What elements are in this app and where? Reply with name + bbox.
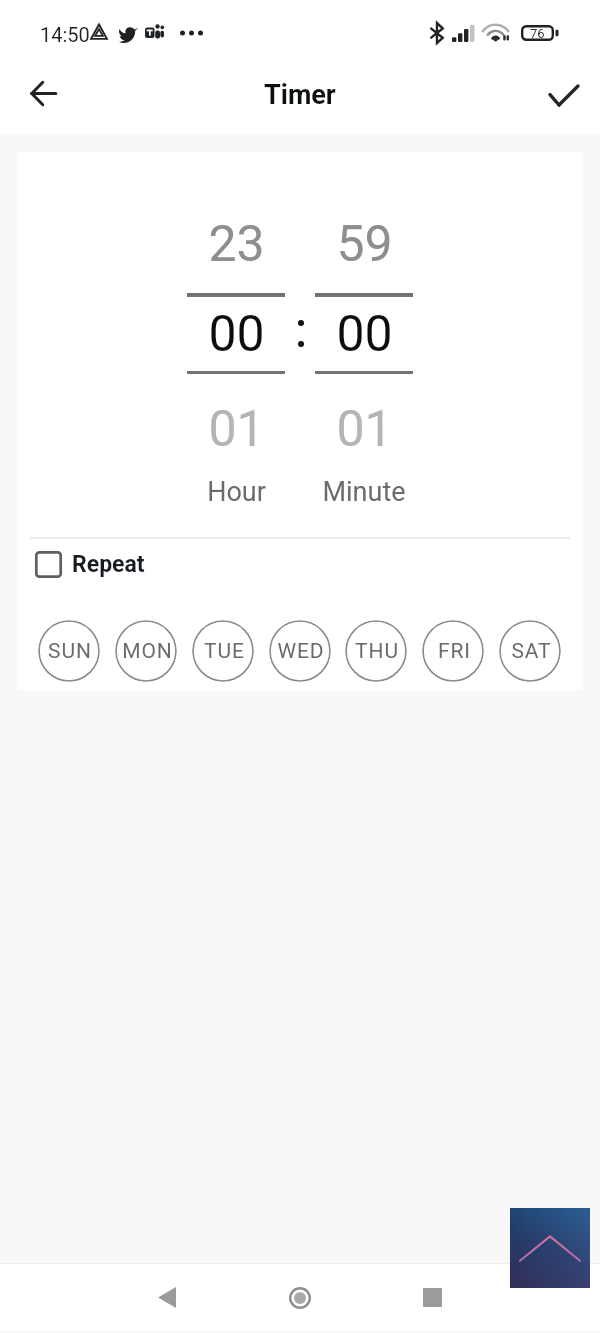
staticText: Minute (322, 476, 406, 508)
staticText: Timer (264, 79, 336, 111)
staticText: 00 (336, 305, 393, 364)
button[interactable]: Recent apps (400, 1265, 464, 1329)
staticText: 59 (336, 215, 393, 274)
button[interactable]: Back (19, 69, 67, 117)
button[interactable]: THU (345, 620, 407, 682)
button[interactable]: SUN (38, 620, 100, 682)
staticText: 14:50 (40, 23, 90, 46)
button[interactable]: TUE (192, 620, 254, 682)
button[interactable]: Repeat (17, 543, 583, 585)
staticText: 01 (208, 400, 265, 459)
staticText: FRI (438, 639, 471, 664)
staticText: 00 (208, 305, 265, 364)
button[interactable]: Save (536, 67, 592, 123)
staticText: 76 (530, 26, 545, 41)
staticText: WED (277, 639, 325, 664)
staticText: SUN (48, 639, 92, 664)
button[interactable]: Expand overlay (510, 1208, 590, 1288)
button[interactable]: MON (115, 620, 177, 682)
button[interactable]: WED (269, 620, 331, 682)
staticText: SAT (511, 639, 552, 664)
staticText: TUE (204, 639, 245, 664)
staticText: MON (122, 639, 173, 664)
button[interactable]: FRI (422, 620, 484, 682)
button[interactable]: SAT (499, 620, 561, 682)
staticText: THU (355, 639, 399, 664)
staticText: 01 (336, 400, 393, 459)
staticText: 23 (208, 215, 265, 274)
button[interactable]: Home (268, 1266, 332, 1330)
staticText: Repeat (72, 551, 145, 578)
button[interactable]: Back (135, 1265, 199, 1329)
staticText: Hour (207, 476, 266, 508)
